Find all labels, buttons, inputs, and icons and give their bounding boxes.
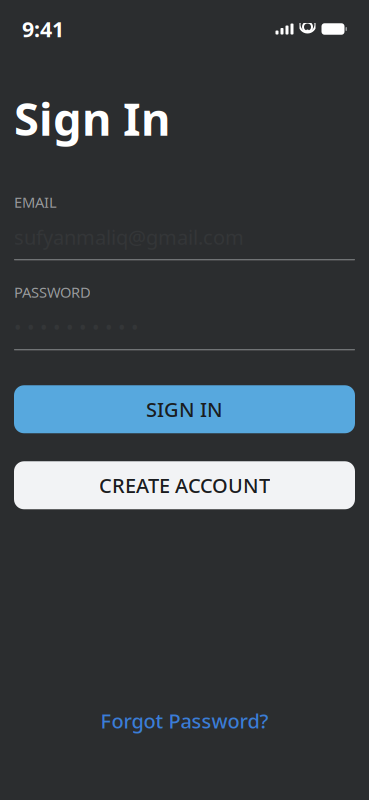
staticText: Sign In	[14, 88, 170, 148]
staticText: CREATE ACCOUNT	[99, 472, 270, 499]
staticText: 9:41	[22, 15, 64, 43]
button[interactable]: SIGN IN	[14, 385, 355, 433]
staticText: PASSWORD	[14, 282, 91, 302]
button[interactable]: Forgot Password?	[14, 699, 355, 742]
staticText: Forgot Password?	[100, 707, 268, 734]
staticText: EMAIL	[14, 192, 57, 212]
button[interactable]: CREATE ACCOUNT	[14, 461, 355, 509]
staticText: SIGN IN	[146, 396, 223, 423]
